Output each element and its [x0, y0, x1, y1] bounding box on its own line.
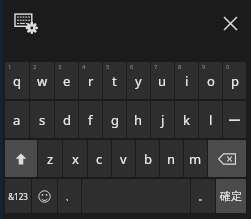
button[interactable]: 9 — [199, 62, 222, 99]
staticText: t — [112, 72, 117, 90]
staticText: g — [111, 111, 119, 129]
staticText: i — [185, 72, 189, 90]
button[interactable]: l — [199, 101, 222, 138]
staticText: ー — [228, 112, 241, 128]
button[interactable]: v — [112, 140, 135, 177]
staticText: a — [13, 111, 21, 129]
staticText: e — [63, 72, 71, 90]
button[interactable]: Emoji — [32, 179, 57, 213]
button[interactable]: 。 — [191, 179, 215, 213]
staticText: m — [189, 150, 202, 168]
button[interactable]: 0 — [223, 62, 246, 99]
button[interactable]: 4 — [79, 62, 102, 99]
staticText: d — [63, 111, 71, 129]
button[interactable]: 確定 — [216, 179, 246, 213]
staticText: q — [13, 72, 21, 90]
button[interactable]: b — [136, 140, 159, 177]
staticText: z — [47, 150, 54, 168]
staticText: k — [183, 111, 190, 129]
button[interactable]: c — [88, 140, 111, 177]
button[interactable]: 7 — [151, 62, 174, 99]
staticText: v — [120, 150, 127, 168]
button[interactable]: Close — [216, 9, 244, 37]
button[interactable]: 6 — [127, 62, 150, 99]
staticText: c — [96, 150, 103, 168]
button[interactable]: d — [55, 101, 78, 138]
staticText: h — [134, 111, 143, 129]
staticText: &123 — [8, 191, 28, 202]
button[interactable]: f — [79, 101, 102, 138]
staticText: 8 — [178, 63, 182, 71]
staticText: p — [231, 72, 239, 90]
button[interactable]: &123 — [5, 179, 31, 213]
button[interactable]: z — [38, 140, 62, 177]
button[interactable]: h — [127, 101, 150, 138]
staticText: 0 — [226, 63, 230, 71]
staticText: 3 — [58, 63, 62, 71]
button[interactable]: m — [184, 140, 207, 177]
staticText: s — [39, 111, 46, 129]
button[interactable]: a — [5, 101, 29, 138]
staticText: r — [88, 72, 94, 90]
staticText: y — [135, 72, 142, 90]
staticText: 4 — [82, 63, 86, 71]
button[interactable]: Backspace — [208, 140, 246, 177]
staticText: w — [37, 72, 48, 90]
staticText: 、 — [65, 190, 75, 203]
staticText: 5 — [106, 63, 110, 71]
button[interactable]: 3 — [55, 62, 78, 99]
staticText: b — [144, 150, 152, 168]
button[interactable]: k — [175, 101, 198, 138]
staticText: 7 — [154, 63, 158, 71]
button[interactable]: x — [63, 140, 87, 177]
staticText: f — [88, 111, 93, 129]
staticText: 6 — [130, 63, 134, 71]
staticText: 確定 — [220, 189, 242, 203]
staticText: 9 — [202, 63, 206, 71]
staticText: x — [72, 150, 79, 168]
button[interactable]: g — [103, 101, 126, 138]
button[interactable]: n — [160, 140, 183, 177]
staticText: j — [161, 111, 165, 129]
staticText: 1 — [8, 63, 12, 71]
button[interactable]: Shift — [5, 140, 37, 177]
staticText: 2 — [33, 63, 37, 71]
button[interactable]: Keyboard settings — [12, 9, 38, 35]
button[interactable]: 5 — [103, 62, 126, 99]
staticText: l — [209, 111, 213, 129]
staticText: n — [167, 150, 176, 168]
button[interactable]: 2 — [30, 62, 54, 99]
button[interactable]: 8 — [175, 62, 198, 99]
button[interactable]: 、 — [58, 179, 81, 213]
button[interactable]: ー — [223, 101, 246, 138]
button[interactable]: j — [151, 101, 174, 138]
staticText: u — [158, 72, 167, 90]
staticText: o — [207, 72, 215, 90]
button[interactable]: s — [30, 101, 54, 138]
button[interactable]: 1 — [5, 62, 29, 99]
staticText: 。 — [198, 190, 208, 203]
